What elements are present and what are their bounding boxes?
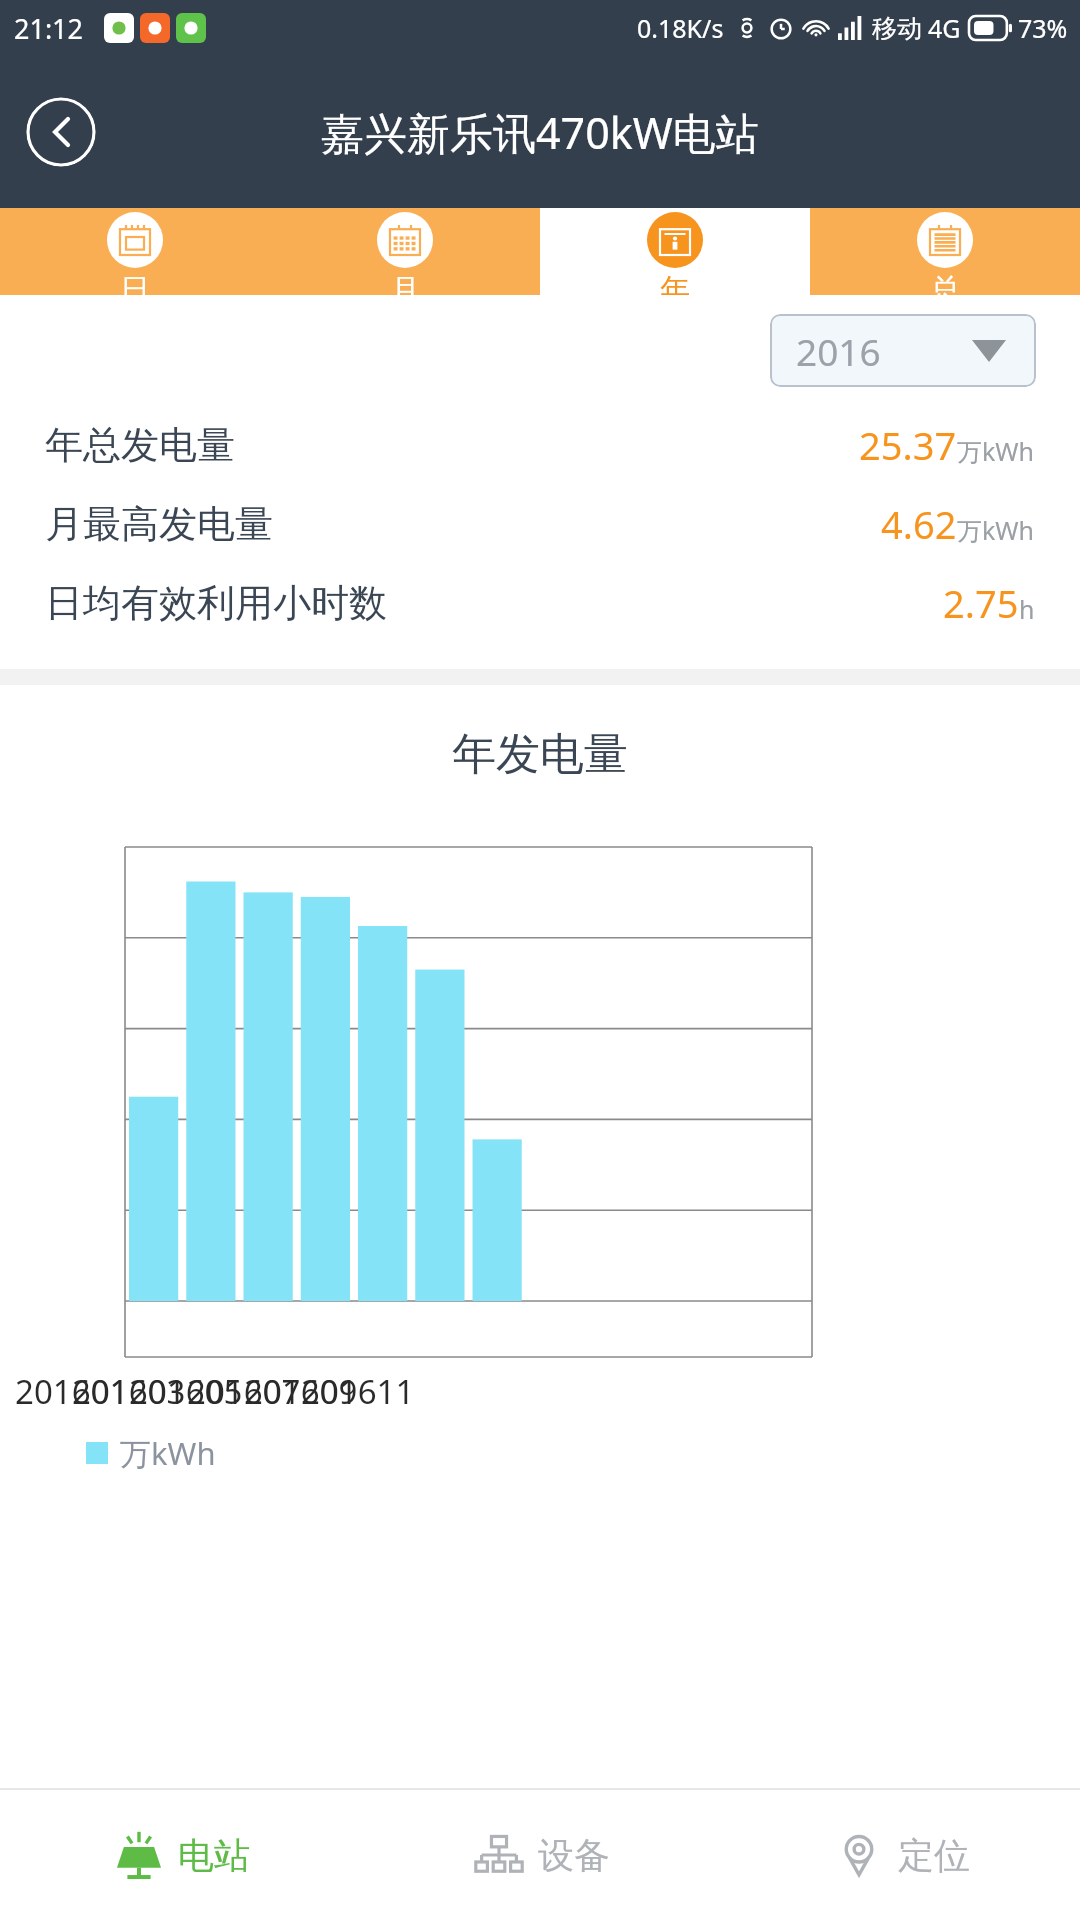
staticText: 2016	[796, 326, 881, 376]
staticText: 4G	[928, 11, 961, 45]
staticText: 日	[120, 271, 150, 295]
staticText: 定位	[898, 1833, 970, 1878]
staticText: 73%	[1018, 11, 1068, 45]
staticText: 年总发电量	[45, 421, 235, 469]
button[interactable]: 日	[0, 208, 270, 295]
staticText: 嘉兴新乐讯470kW电站	[321, 103, 759, 162]
staticText: 月	[390, 271, 420, 295]
button[interactable]: 日均有效利用小时数	[0, 563, 1080, 642]
staticText: 2.75	[943, 577, 1019, 629]
staticText: 万kWh	[120, 1432, 216, 1474]
staticText: 电站	[178, 1833, 250, 1878]
staticText: 25.37	[859, 419, 957, 471]
staticText: 日均有效利用小时数	[45, 579, 387, 627]
button[interactable]: 年	[540, 208, 810, 295]
staticText: h	[1019, 592, 1035, 626]
button[interactable]: 定位	[720, 1790, 1080, 1920]
staticText: 201603	[72, 1369, 186, 1414]
staticText: 201607	[187, 1369, 301, 1414]
button[interactable]: 2016	[770, 314, 1036, 387]
button[interactable]: 设备	[360, 1790, 720, 1920]
staticText: 设备	[538, 1833, 610, 1878]
staticText: 201605	[129, 1369, 243, 1414]
staticText: 201609	[244, 1369, 358, 1414]
button[interactable]: 电站	[0, 1790, 360, 1920]
staticText: 月最高发电量	[45, 500, 273, 548]
staticText: 年发电量	[0, 727, 1080, 782]
staticText: 21:12	[14, 10, 84, 47]
button[interactable]: Back	[26, 97, 96, 167]
staticText: 201601	[15, 1369, 129, 1414]
button[interactable]: 月	[270, 208, 540, 295]
staticText: 201611	[301, 1369, 415, 1414]
staticText: 4.62	[881, 498, 957, 550]
button[interactable]: 年总发电量	[0, 405, 1080, 484]
button[interactable]: 月最高发电量	[0, 484, 1080, 563]
staticText: 0.18K/s	[637, 11, 724, 45]
button[interactable]: 总	[810, 208, 1080, 295]
staticText: 移动	[872, 13, 922, 44]
staticText: 年	[660, 271, 690, 295]
staticText: 万kWh	[957, 434, 1035, 468]
staticText: 万kWh	[957, 513, 1035, 547]
staticText: 总	[930, 271, 960, 295]
